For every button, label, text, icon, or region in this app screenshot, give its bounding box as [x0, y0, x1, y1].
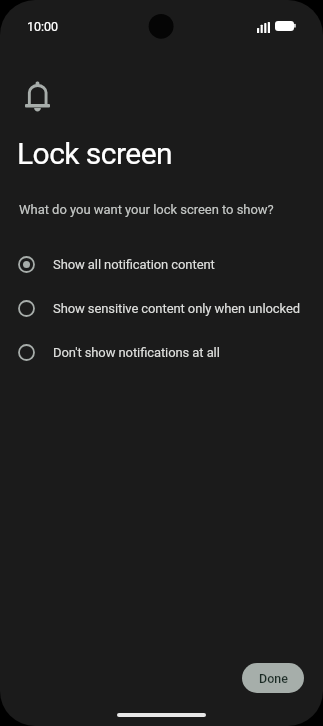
button[interactable]: Done	[242, 663, 304, 693]
staticText: Lock screen	[17, 136, 173, 171]
button[interactable]: Show sensitive content only when unlocke…	[0, 286, 323, 330]
staticText: Show sensitive content only when unlocke…	[53, 301, 300, 316]
other: Notifications	[25, 81, 50, 112]
staticText: Done	[259, 671, 288, 686]
staticText: 10:00	[27, 19, 59, 34]
button[interactable]: Don't show notifications at all	[0, 330, 323, 374]
staticText: What do you want your lock screen to sho…	[19, 202, 274, 217]
staticText: Show all notification content	[53, 257, 215, 272]
staticText: Don't show notifications at all	[53, 345, 220, 360]
button[interactable]: Show all notification content	[0, 242, 323, 286]
